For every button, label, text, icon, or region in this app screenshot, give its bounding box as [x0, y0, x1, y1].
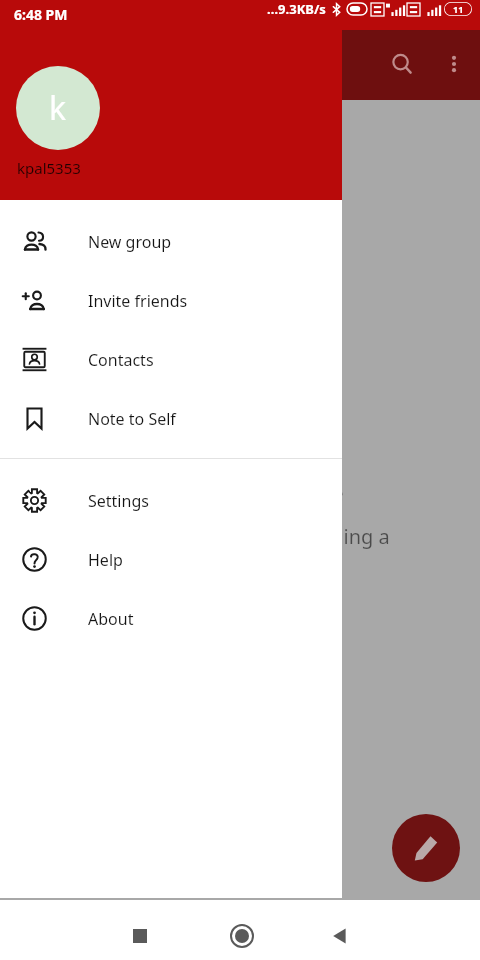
- staticText: 11: [453, 3, 464, 15]
- staticText: Invite friends: [88, 290, 188, 312]
- staticText: Note to Self: [88, 408, 176, 430]
- button[interactable]: Search: [380, 42, 424, 86]
- staticText: 6:48 PM: [14, 5, 68, 24]
- staticText: Contacts: [88, 349, 154, 371]
- staticText: kpal5353: [17, 158, 81, 178]
- button[interactable]: Settings: [0, 471, 342, 530]
- staticText: About: [88, 608, 134, 630]
- button[interactable]: About: [0, 589, 342, 648]
- button[interactable]: Invite friends: [0, 271, 342, 330]
- button[interactable]: k: [16, 66, 100, 150]
- button[interactable]: Contacts: [0, 330, 342, 389]
- button[interactable]: Home: [218, 912, 266, 960]
- button[interactable]: Compose new message: [392, 814, 460, 882]
- button[interactable]: Recents: [118, 914, 162, 958]
- button[interactable]: New group: [0, 212, 342, 271]
- staticText: …9.3KB/s: [267, 0, 326, 18]
- staticText: Help: [88, 549, 123, 571]
- staticText: Settings: [88, 490, 149, 512]
- staticText: New group: [88, 231, 172, 253]
- button[interactable]: Back: [316, 912, 364, 960]
- staticText: k: [49, 86, 67, 130]
- staticText: Tap the pencil to write: [136, 480, 344, 507]
- button[interactable]: More options: [432, 42, 476, 86]
- button[interactable]: Help: [0, 530, 342, 589]
- button[interactable]: Note to Self: [0, 389, 342, 448]
- staticText: a message or start messaging a: [91, 523, 390, 550]
